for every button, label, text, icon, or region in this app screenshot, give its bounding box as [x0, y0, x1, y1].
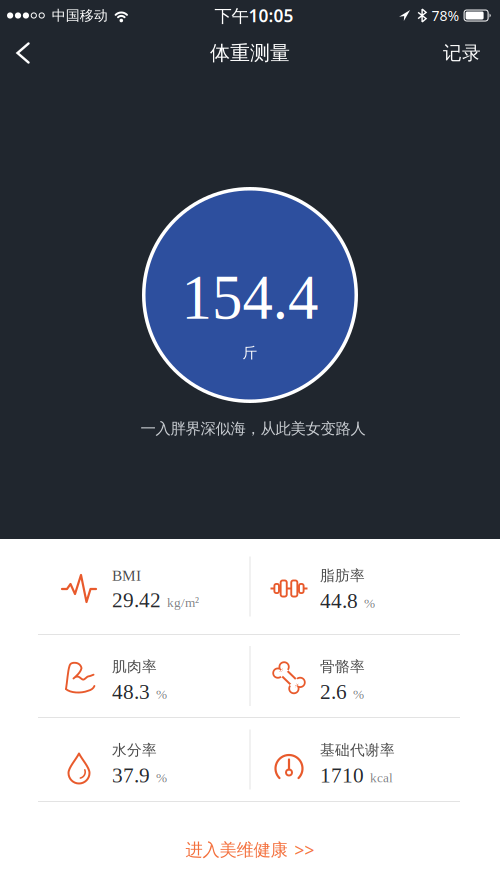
- staticText: 中国移动: [52, 7, 108, 24]
- staticText: 记录: [443, 41, 481, 65]
- button[interactable]: Back: [0, 34, 30, 72]
- staticText: >>: [294, 838, 314, 862]
- staticText: 29.42: [112, 588, 161, 612]
- staticText: %: [156, 687, 167, 702]
- staticText: BMI: [112, 567, 141, 584]
- staticText: kcal: [370, 770, 393, 785]
- staticText: %: [364, 596, 375, 611]
- staticText: 44.8: [320, 589, 358, 612]
- staticText: 水分率: [112, 741, 157, 759]
- staticText: 78%: [432, 6, 460, 25]
- button[interactable]: 记录: [443, 31, 500, 75]
- staticText: 骨骼率: [320, 657, 365, 676]
- staticText: 肌肉率: [112, 657, 157, 676]
- staticText: 进入美维健康: [185, 839, 287, 861]
- staticText: %: [156, 770, 167, 785]
- staticText: 1710: [320, 763, 364, 787]
- staticText: 37.9: [112, 763, 150, 787]
- staticText: 154.4: [178, 262, 322, 333]
- staticText: 体重测量: [210, 40, 290, 66]
- staticText: 48.3: [112, 680, 150, 703]
- staticText: 2.6: [320, 680, 347, 703]
- staticText: 斤: [242, 344, 257, 362]
- staticText: 下午10:05: [214, 4, 293, 27]
- staticText: 脂肪率: [320, 566, 365, 585]
- staticText: 一入胖界深似海，从此美女变路人: [140, 419, 365, 438]
- staticText: kg/m²: [167, 595, 199, 610]
- staticText: %: [353, 687, 364, 702]
- staticText: 基础代谢率: [320, 741, 395, 759]
- button[interactable]: 进入美维健康: [0, 802, 500, 888]
